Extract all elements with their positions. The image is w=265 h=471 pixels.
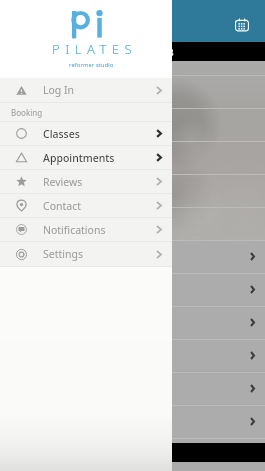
button[interactable] [0,405,265,438]
staticText: PILATES [52,40,138,58]
button[interactable]: Log In [0,78,172,102]
button[interactable]: Settings [0,242,172,266]
staticText: Notifications [43,223,106,237]
staticText: Booking [11,107,43,118]
staticText: Classes [43,127,80,141]
button[interactable] [0,438,265,443]
button[interactable] [0,108,265,141]
button[interactable] [0,372,265,405]
staticText: Reviews [43,175,83,189]
button[interactable]: Classes [0,122,172,145]
button[interactable] [0,339,265,372]
button[interactable]: Calendar [228,11,257,40]
staticText: Settings [43,247,83,261]
button[interactable] [0,273,265,306]
button[interactable]: Reviews [0,170,172,193]
button[interactable] [0,240,265,273]
button[interactable]: Contact [0,194,172,217]
staticText: reformer studio [69,61,114,69]
button[interactable] [0,306,265,339]
button[interactable] [0,75,265,108]
staticText: Log In [43,83,75,97]
button[interactable] [0,141,265,174]
button[interactable]: Notifications [0,218,172,241]
button[interactable]: Appointments [0,146,172,169]
button[interactable] [0,207,265,240]
staticText: Contact [43,199,81,213]
staticText: WED 23 [141,46,174,58]
staticText: Appointments [43,151,115,165]
button[interactable] [0,174,265,207]
